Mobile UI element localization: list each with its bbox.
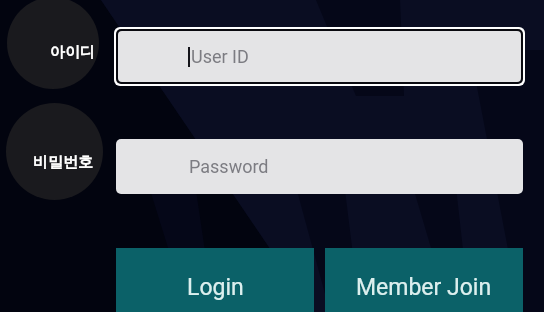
- staticText: Member Join: [356, 274, 492, 301]
- button[interactable]: Password: [116, 139, 523, 194]
- staticText: User ID: [191, 46, 249, 67]
- button[interactable]: User ID: [118, 31, 521, 82]
- staticText: 비밀번호: [33, 153, 93, 172]
- button[interactable]: Member Join: [325, 248, 523, 312]
- staticText: Login: [187, 274, 244, 301]
- staticText: Password: [189, 156, 269, 177]
- button[interactable]: Login: [116, 248, 314, 312]
- staticText: 아이디: [50, 43, 95, 62]
